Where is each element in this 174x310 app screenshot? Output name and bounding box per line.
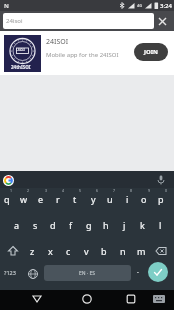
button[interactable] [152, 294, 166, 304]
button[interactable] [156, 15, 169, 28]
button[interactable]: i [119, 193, 135, 205]
staticText: 4 [62, 188, 65, 193]
button[interactable] [155, 174, 167, 186]
staticText: 3 [45, 188, 48, 193]
staticText: m [137, 245, 146, 257]
button[interactable]: g [81, 219, 97, 231]
button[interactable]: t [67, 193, 83, 205]
staticText: z [30, 245, 35, 257]
staticText: 2 [27, 188, 30, 193]
button[interactable]: w [16, 193, 32, 205]
button[interactable]: v [78, 245, 94, 257]
staticText: 6 [96, 188, 99, 193]
staticText: 7 [113, 188, 116, 193]
staticText: e [38, 193, 44, 205]
button[interactable] [148, 262, 168, 282]
button[interactable]: j [116, 219, 132, 231]
button[interactable]: 24isoi [3, 13, 154, 29]
staticText: JOIN [144, 48, 158, 56]
staticText: 24thISOI [11, 64, 31, 70]
staticText: t [73, 193, 77, 205]
staticText: j [123, 219, 126, 231]
button[interactable] [79, 291, 95, 307]
staticText: k [140, 219, 145, 231]
button[interactable]: k [134, 219, 150, 231]
staticText: v [84, 245, 89, 257]
staticText: c [66, 245, 71, 257]
button[interactable]: f [63, 219, 79, 231]
staticText: 24ISOI [46, 37, 69, 47]
button[interactable]: c [60, 245, 76, 257]
button[interactable]: x [42, 245, 58, 257]
staticText: l [159, 219, 162, 231]
staticText: u [107, 193, 113, 205]
button[interactable]: r [50, 193, 66, 205]
button[interactable]: b [96, 245, 112, 257]
button[interactable]: o [136, 193, 152, 205]
staticText: w [20, 193, 28, 205]
staticText: 24isoi [6, 17, 23, 25]
button[interactable]: s [27, 219, 43, 231]
button[interactable]: l [152, 219, 168, 231]
button[interactable]: m [133, 245, 149, 257]
button[interactable]: a [9, 219, 25, 231]
button[interactable]: I.S.O.I [0, 31, 174, 75]
staticText: o [141, 193, 147, 205]
button[interactable] [29, 291, 45, 307]
staticText: a [14, 219, 20, 231]
staticText: x [48, 245, 53, 257]
button[interactable]: EN · ES [44, 265, 131, 281]
button[interactable]: d [45, 219, 61, 231]
staticText: h [103, 219, 109, 231]
staticText: 5 [79, 188, 82, 193]
staticText: i [126, 193, 129, 205]
button[interactable] [151, 245, 169, 257]
staticText: s [33, 219, 38, 231]
staticText: g [86, 219, 92, 231]
staticText: b [101, 245, 107, 257]
staticText: EN · ES [79, 270, 96, 277]
button[interactable]: q [0, 193, 15, 205]
staticText: 1 [10, 188, 13, 193]
staticText: 8 [130, 188, 133, 193]
staticText: r [56, 193, 60, 205]
staticText: y [91, 193, 96, 205]
button[interactable]: e [33, 193, 49, 205]
staticText: I.S.O.I [16, 48, 25, 52]
button[interactable]: . [137, 266, 139, 276]
button[interactable]: z [24, 245, 40, 257]
button[interactable]: JOIN [134, 43, 168, 61]
staticText: d [50, 219, 56, 231]
staticText: 9 [148, 188, 151, 193]
button[interactable] [27, 268, 39, 280]
staticText: 0 [165, 188, 168, 193]
staticText: 4G [137, 3, 143, 8]
button[interactable]: p [153, 193, 169, 205]
staticText: 3:24 [160, 2, 172, 10]
button[interactable]: u [102, 193, 118, 205]
staticText: n [120, 245, 126, 257]
staticText: N [4, 2, 9, 10]
staticText: Mobile app for the 24ISOI [46, 51, 119, 59]
staticText: f [69, 219, 73, 231]
button[interactable]: ?123 [4, 269, 16, 276]
button[interactable] [4, 245, 22, 257]
button[interactable] [123, 291, 139, 307]
button[interactable]: h [98, 219, 114, 231]
staticText: q [4, 193, 10, 205]
button[interactable] [3, 175, 14, 186]
button[interactable]: y [85, 193, 101, 205]
button[interactable]: n [115, 245, 131, 257]
staticText: p [158, 193, 164, 205]
